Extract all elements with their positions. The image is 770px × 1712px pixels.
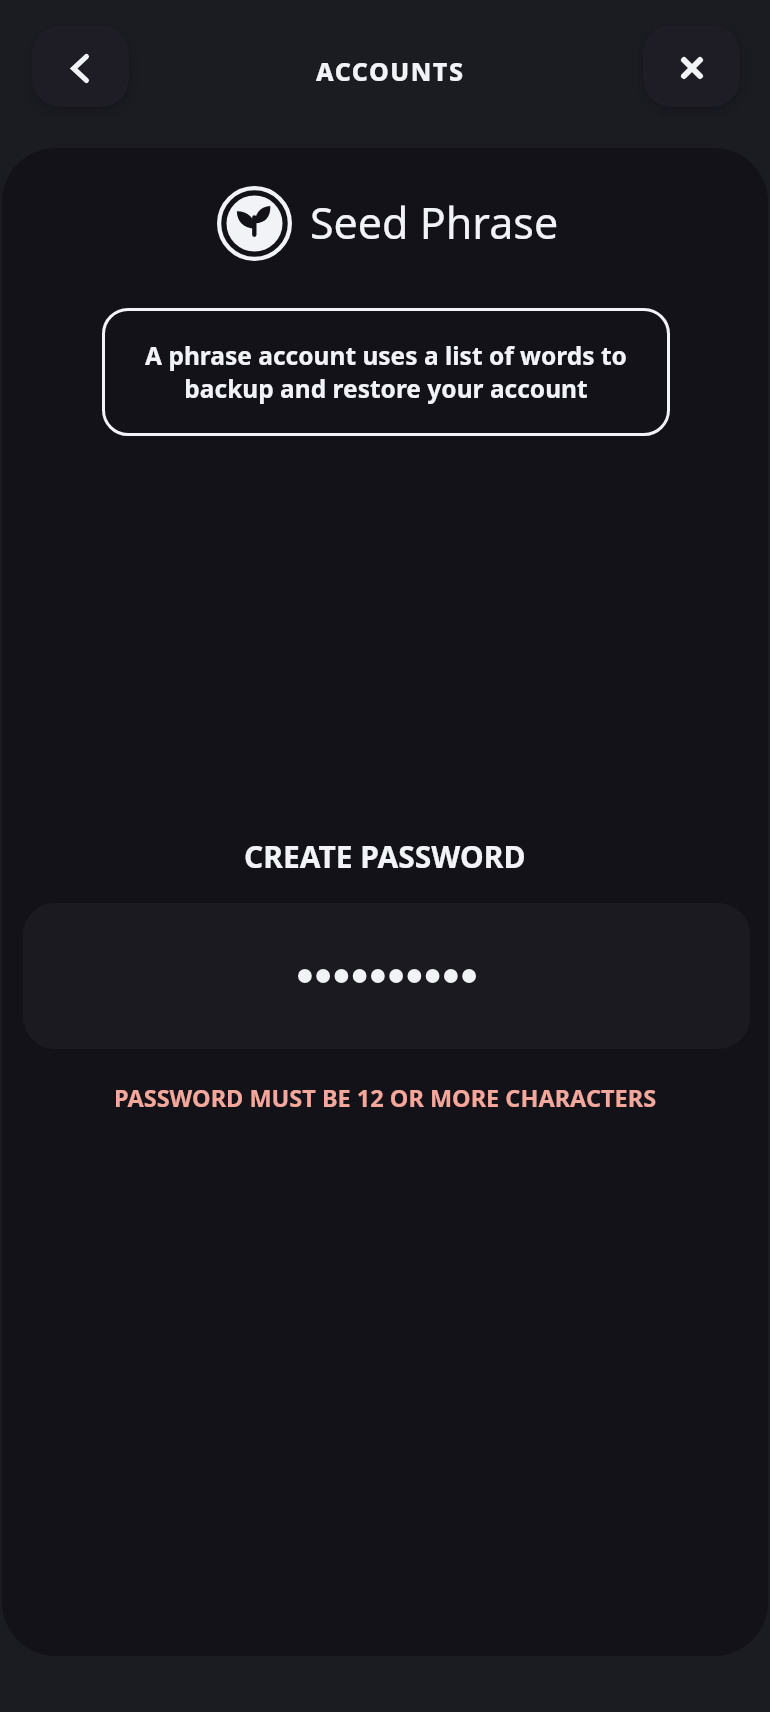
staticText: CREATE PASSWORD: [244, 836, 526, 877]
staticText: ACCOUNTS: [316, 54, 465, 88]
button[interactable]: Close: [643, 25, 740, 107]
staticText: A phrase account uses a list of words to…: [132, 339, 640, 405]
button[interactable]: Back: [32, 25, 129, 107]
button[interactable]: Password: [23, 903, 750, 1049]
staticText: Seed Phrase: [310, 193, 559, 252]
staticText: PASSWORD MUST BE 12 OR MORE CHARACTERS: [114, 1082, 657, 1114]
